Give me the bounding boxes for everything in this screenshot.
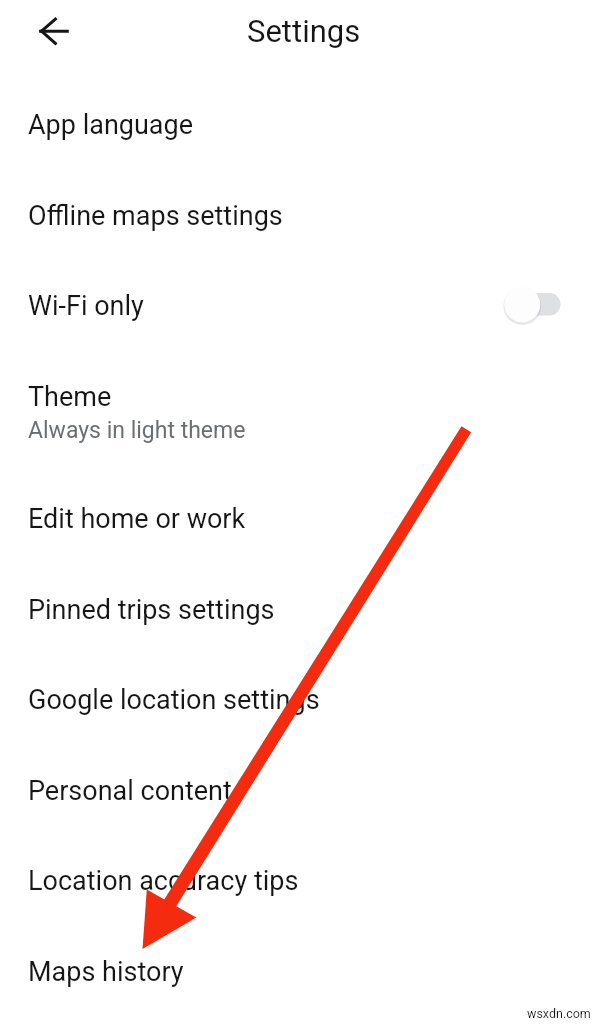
button[interactable]: Theme: [0, 343, 601, 465]
button[interactable]: App language: [0, 71, 601, 161]
button[interactable]: Wi-Fi only, off: [480, 278, 601, 332]
button[interactable]: Google location settings: [0, 646, 601, 736]
staticText: Edit home or work: [28, 503, 246, 535]
staticText: Always in light theme: [28, 417, 246, 444]
staticText: Location accuracy tips: [28, 865, 299, 897]
staticText: Wi-Fi only: [28, 290, 144, 322]
button[interactable]: Pinned trips settings: [0, 556, 601, 646]
staticText: wsxdn.com: [527, 1006, 591, 1021]
button[interactable]: Navigate up: [30, 7, 78, 55]
button[interactable]: Location accuracy tips: [0, 827, 601, 917]
staticText: Theme: [28, 381, 112, 413]
button[interactable]: Offline maps settings: [0, 162, 601, 252]
staticText: App language: [28, 109, 194, 141]
button[interactable]: Wi-Fi only: [0, 252, 601, 342]
staticText: Maps history: [28, 956, 184, 988]
staticText: Offline maps settings: [28, 200, 283, 232]
staticText: Google location settings: [28, 684, 320, 716]
staticText: Pinned trips settings: [28, 594, 275, 626]
staticText: Settings: [247, 13, 361, 49]
button[interactable]: Edit home or work: [0, 465, 601, 555]
button[interactable]: Maps history: [0, 918, 601, 1008]
button[interactable]: Personal content: [0, 737, 601, 827]
staticText: Personal content: [28, 775, 232, 807]
